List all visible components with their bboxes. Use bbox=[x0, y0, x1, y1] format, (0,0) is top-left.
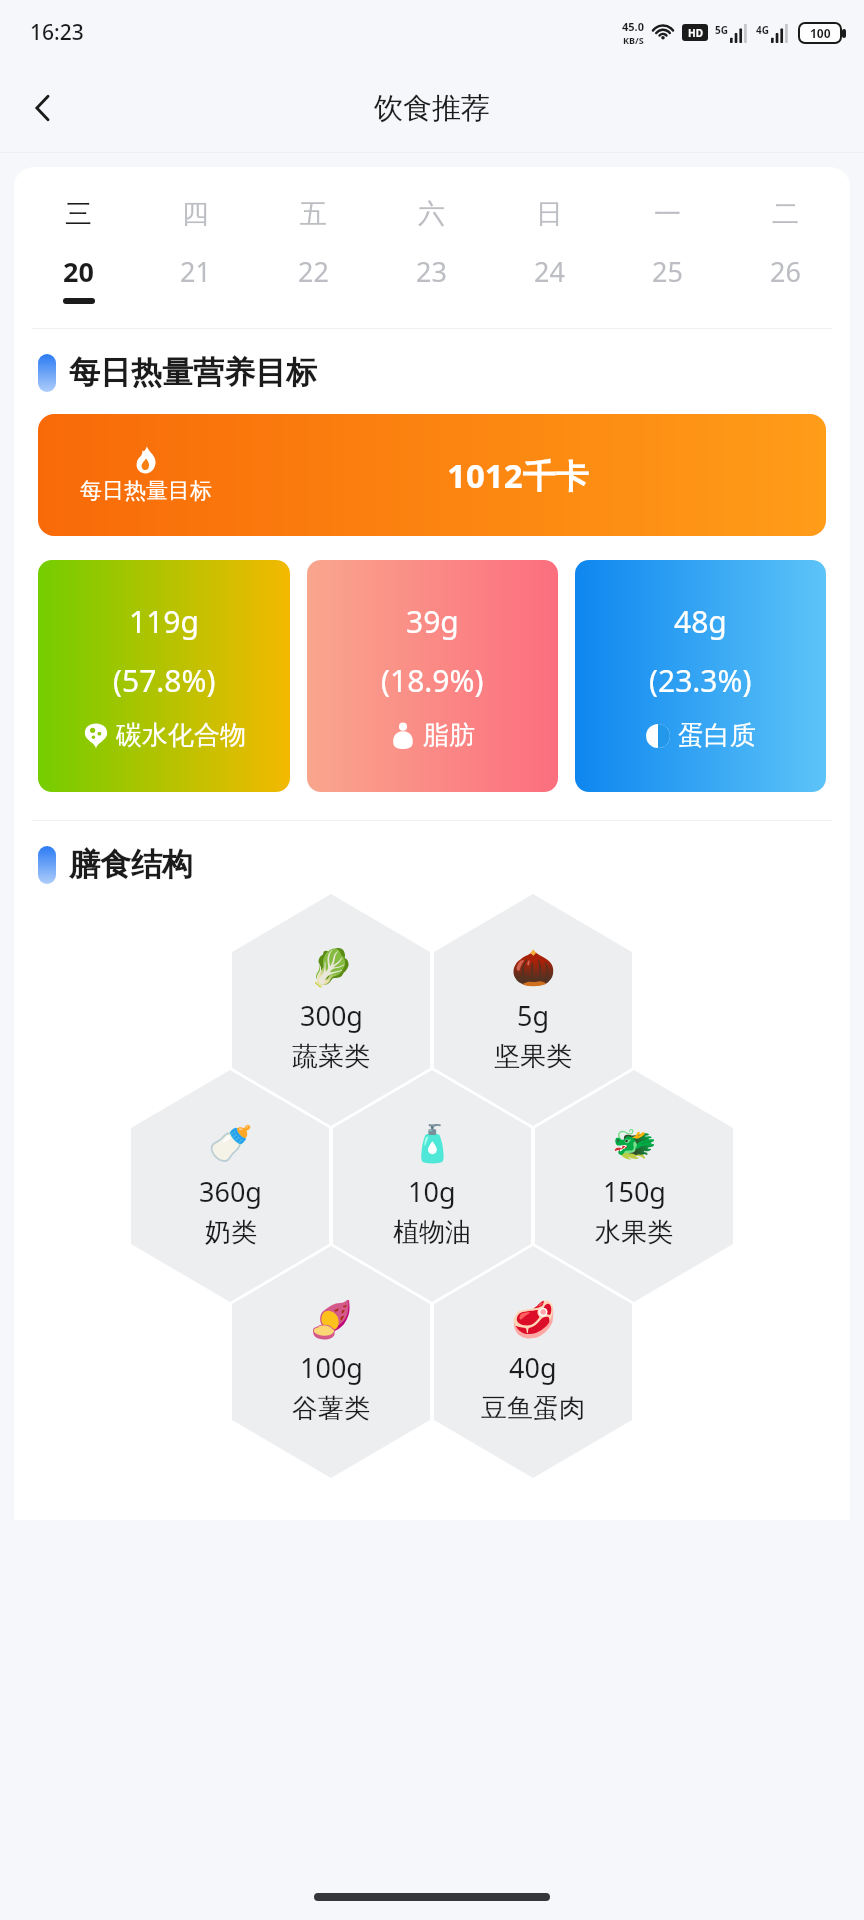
staticText: 21 bbox=[180, 253, 211, 290]
button[interactable]: 🧴 bbox=[333, 1070, 531, 1302]
button[interactable]: 五 bbox=[254, 193, 372, 308]
staticText: 水果类 bbox=[595, 1216, 673, 1249]
staticText: 四 bbox=[182, 197, 209, 231]
staticText: 10g bbox=[408, 1173, 456, 1210]
button[interactable]: 🥬 bbox=[232, 894, 430, 1126]
button[interactable]: 三 bbox=[20, 193, 137, 308]
staticText: (23.3%) bbox=[649, 660, 752, 701]
staticText: 🌰 bbox=[511, 947, 556, 989]
staticText: 5g bbox=[517, 997, 550, 1034]
staticText: 每日热量目标 bbox=[80, 477, 212, 505]
button[interactable]: 🐲 bbox=[535, 1070, 733, 1302]
staticText: 二 bbox=[772, 197, 799, 231]
staticText: 360g bbox=[199, 1173, 262, 1210]
staticText: HD bbox=[688, 26, 703, 40]
button[interactable]: 每日热量目标 bbox=[38, 414, 826, 536]
staticText: 谷薯类 bbox=[292, 1392, 370, 1425]
staticText: 日 bbox=[536, 197, 563, 231]
button[interactable]: 二 bbox=[726, 193, 844, 308]
staticText: 39g bbox=[406, 601, 459, 642]
staticText: 每日热量营养目标 bbox=[69, 353, 317, 392]
button[interactable]: 六 bbox=[372, 193, 490, 308]
button[interactable]: 🌰 bbox=[434, 894, 632, 1126]
staticText: KB/S bbox=[623, 34, 644, 46]
staticText: 100g bbox=[300, 1349, 363, 1386]
staticText: 16:23 bbox=[30, 18, 84, 47]
staticText: (18.9%) bbox=[381, 660, 484, 701]
staticText: 🥬 bbox=[309, 947, 354, 989]
staticText: 蔬菜类 bbox=[292, 1040, 370, 1073]
staticText: 碳水化合物 bbox=[116, 719, 246, 752]
staticText: 300g bbox=[300, 997, 363, 1034]
button[interactable]: 🥩 bbox=[434, 1246, 632, 1478]
staticText: 饮食推荐 bbox=[374, 90, 490, 127]
staticText: 蛋白质 bbox=[678, 719, 756, 752]
staticText: 🧴 bbox=[410, 1123, 455, 1165]
staticText: 坚果类 bbox=[494, 1040, 572, 1073]
button[interactable]: 🍼 bbox=[131, 1070, 329, 1302]
staticText: 植物油 bbox=[393, 1216, 471, 1249]
button[interactable]: 一 bbox=[608, 193, 726, 308]
button[interactable]: 48g bbox=[575, 560, 826, 792]
staticText: 25 bbox=[652, 253, 683, 290]
button[interactable]: 🍠 bbox=[232, 1246, 430, 1478]
button[interactable]: 四 bbox=[137, 193, 254, 308]
staticText: 100 bbox=[810, 25, 831, 41]
button[interactable]: 日 bbox=[490, 193, 608, 308]
staticText: 1012千卡 bbox=[447, 453, 589, 498]
staticText: 150g bbox=[603, 1173, 666, 1210]
staticText: 45.0 bbox=[622, 19, 644, 34]
staticText: 🥩 bbox=[511, 1299, 556, 1341]
staticText: 奶类 bbox=[205, 1216, 257, 1249]
staticText: 膳食结构 bbox=[69, 845, 193, 884]
staticText: 24 bbox=[534, 253, 565, 290]
staticText: 5G bbox=[715, 23, 728, 37]
staticText: 脂肪 bbox=[423, 719, 475, 752]
button[interactable]: 119g bbox=[38, 560, 290, 792]
staticText: 一 bbox=[654, 197, 681, 231]
staticText: 40g bbox=[509, 1349, 557, 1386]
staticText: 23 bbox=[416, 253, 447, 290]
button[interactable]: Back bbox=[14, 79, 72, 137]
staticText: (57.8%) bbox=[113, 660, 216, 701]
staticText: 20 bbox=[63, 253, 94, 290]
staticText: 六 bbox=[418, 197, 445, 231]
staticText: 26 bbox=[770, 253, 801, 290]
staticText: 119g bbox=[129, 601, 199, 642]
staticText: 22 bbox=[298, 253, 329, 290]
staticText: 🐲 bbox=[612, 1123, 657, 1165]
staticText: 三 bbox=[65, 197, 92, 231]
staticText: 五 bbox=[300, 197, 327, 231]
staticText: 豆鱼蛋肉 bbox=[481, 1392, 585, 1425]
staticText: 🍼 bbox=[208, 1123, 253, 1165]
staticText: 4G bbox=[756, 23, 769, 37]
staticText: 48g bbox=[674, 601, 727, 642]
button[interactable]: 39g bbox=[307, 560, 558, 792]
staticText: 🍠 bbox=[309, 1299, 354, 1341]
